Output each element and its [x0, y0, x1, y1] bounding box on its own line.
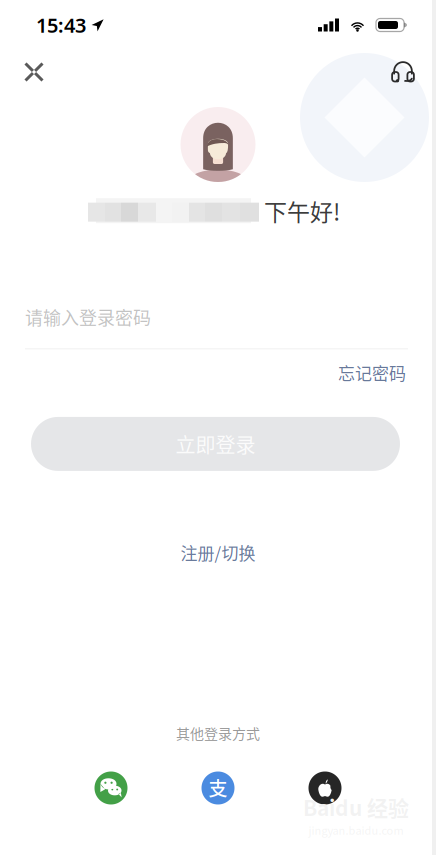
button[interactable]: Customer service — [381, 50, 425, 94]
button[interactable]: WeChat login — [85, 762, 137, 814]
button[interactable]: 立即登录 — [31, 417, 400, 471]
button[interactable]: Close — [12, 50, 56, 94]
staticText: 下午好! — [264, 194, 340, 227]
staticText: 立即登录 — [175, 429, 255, 458]
staticText: 其他登录方式 — [176, 723, 260, 743]
staticText: 请输入登录密码 — [25, 304, 151, 330]
button[interactable]: 忘记密码 — [334, 355, 410, 390]
staticText: 注册/切换 — [180, 540, 255, 564]
button[interactable]: 注册/切换 — [166, 533, 269, 571]
staticText: 忘记密码 — [338, 360, 406, 385]
staticText: Baidu 经验 — [303, 792, 409, 822]
staticText: 15:43 — [36, 12, 86, 38]
button[interactable]: Alipay login — [192, 762, 244, 814]
staticText: 支 — [208, 774, 227, 801]
button[interactable]: Apple login — [299, 762, 351, 814]
